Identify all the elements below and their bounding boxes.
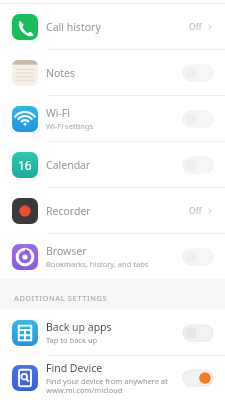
button[interactable]: Wi-Fi — [0, 96, 225, 141]
button[interactable]: Toggle off — [183, 65, 213, 81]
button[interactable]: Find Device — [0, 356, 225, 400]
staticText: Find your device from anywhere at www.mi… — [46, 376, 168, 396]
staticText: Wi-Fi settings — [46, 121, 94, 131]
staticText: Calendar — [46, 158, 91, 172]
staticText: Tap to back up — [46, 335, 98, 345]
staticText: Off — [189, 21, 202, 33]
button[interactable]: Notes — [0, 50, 225, 95]
button[interactable]: 16 — [0, 142, 225, 187]
staticText: ADDITIONAL SETTINGS — [14, 293, 108, 303]
staticText: Bookmarks, history, and tabs — [46, 259, 149, 269]
button[interactable]: Toggle off — [183, 249, 213, 265]
button[interactable]: Toggle off — [183, 325, 213, 341]
staticText: Off — [189, 205, 202, 217]
button[interactable]: Toggle on — [183, 370, 213, 386]
staticText: Back up apps — [46, 320, 112, 334]
staticText: 16 — [18, 157, 32, 173]
button[interactable]: Toggle off — [183, 157, 213, 173]
button[interactable]: Toggle off — [183, 111, 213, 127]
staticText: Notes — [46, 66, 76, 80]
staticText: Call history — [46, 20, 101, 34]
button[interactable]: Back up apps — [0, 310, 225, 355]
button[interactable]: Call history — [0, 4, 225, 49]
staticText: Wi-Fi — [46, 106, 71, 120]
staticText: Browser — [46, 244, 87, 258]
staticText: Recorder — [46, 204, 91, 218]
staticText: Find Device — [46, 361, 103, 375]
button[interactable]: Recorder — [0, 188, 225, 233]
button[interactable]: Browser — [0, 234, 225, 279]
